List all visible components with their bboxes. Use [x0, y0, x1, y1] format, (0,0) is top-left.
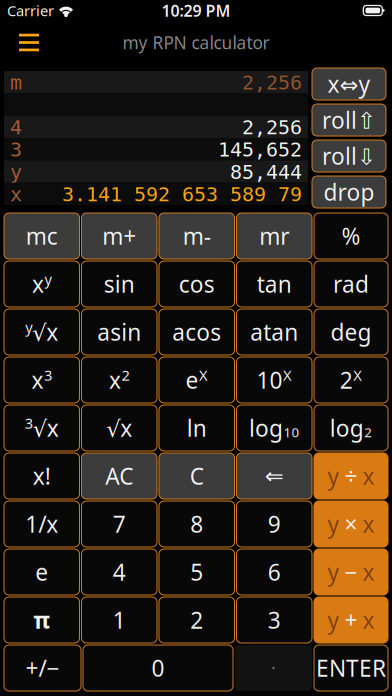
staticText: 2: [190, 605, 203, 635]
button[interactable]: 8: [159, 501, 234, 547]
staticText: +: [344, 605, 357, 635]
button[interactable]: π: [4, 597, 79, 643]
staticText: mc: [26, 221, 58, 251]
staticText: y: [44, 269, 51, 289]
button[interactable]: 2: [159, 597, 234, 643]
staticText: x: [10, 183, 22, 206]
staticText: y: [25, 317, 32, 337]
button[interactable]: Menu: [12, 25, 46, 59]
staticText: 5: [190, 557, 203, 587]
button[interactable]: asin: [81, 309, 157, 355]
button[interactable]: y: [314, 501, 388, 547]
button[interactable]: x: [81, 357, 157, 403]
staticText: 0: [151, 653, 164, 683]
button[interactable]: tan: [236, 261, 312, 307]
staticText: log: [330, 413, 364, 443]
staticText: x: [362, 461, 374, 491]
button[interactable]: 7: [81, 501, 157, 547]
staticText: cos: [179, 269, 215, 299]
staticText: x: [109, 365, 121, 395]
staticText: deg: [330, 317, 371, 347]
button[interactable]: mr: [236, 213, 312, 259]
button[interactable]: mc: [4, 213, 79, 259]
staticText: roll⇩: [322, 141, 376, 171]
staticText: x⇔y: [327, 69, 370, 99]
button[interactable]: 2: [314, 357, 388, 403]
button[interactable]: y: [314, 549, 388, 595]
button[interactable]: +/−: [4, 645, 81, 691]
staticText: y: [327, 461, 339, 491]
staticText: rad: [333, 269, 369, 299]
button[interactable]: rad: [314, 261, 388, 307]
button[interactable]: log: [314, 405, 388, 451]
button[interactable]: x: [4, 261, 79, 307]
staticText: −: [344, 557, 357, 587]
button[interactable]: y: [4, 309, 79, 355]
button[interactable]: cos: [159, 261, 234, 307]
button[interactable]: x: [4, 357, 79, 403]
staticText: ln: [187, 413, 207, 443]
button[interactable]: atan: [236, 309, 312, 355]
button[interactable]: y: [314, 453, 388, 499]
staticText: x!: [33, 461, 51, 491]
button[interactable]: %: [314, 213, 388, 259]
staticText: sin: [104, 269, 135, 299]
button[interactable]: e: [159, 357, 234, 403]
staticText: drop: [323, 177, 374, 207]
button[interactable]: drop: [312, 176, 386, 208]
staticText: m-: [183, 221, 211, 251]
staticText: 2,256: [242, 71, 302, 94]
button[interactable]: 1/x: [4, 501, 79, 547]
staticText: acos: [172, 317, 221, 347]
button[interactable]: 0: [83, 645, 233, 691]
button[interactable]: ENTER: [314, 645, 388, 691]
button[interactable]: 6: [236, 549, 312, 595]
staticText: mr: [259, 221, 289, 251]
button[interactable]: deg: [314, 309, 388, 355]
staticText: C: [190, 461, 204, 491]
button[interactable]: roll⇧: [312, 104, 386, 136]
button[interactable]: Decimal point: [235, 645, 312, 691]
staticText: X: [353, 365, 362, 385]
button[interactable]: sin: [81, 261, 157, 307]
staticText: y: [327, 605, 339, 635]
button[interactable]: 3: [4, 405, 79, 451]
staticText: 2: [364, 423, 372, 441]
button[interactable]: AC: [81, 453, 157, 499]
staticText: 3: [10, 138, 22, 161]
button[interactable]: 9: [236, 501, 312, 547]
staticText: tan: [257, 269, 292, 299]
button[interactable]: ⇐: [236, 453, 312, 499]
staticText: X: [199, 365, 208, 385]
button[interactable]: acos: [159, 309, 234, 355]
staticText: √x: [33, 413, 59, 443]
button[interactable]: 3: [236, 597, 312, 643]
staticText: 85,444: [230, 160, 302, 184]
staticText: 3.141 592 653 589 79: [62, 183, 302, 206]
staticText: 3: [25, 413, 33, 433]
button[interactable]: 1: [81, 597, 157, 643]
button[interactable]: √x: [81, 405, 157, 451]
button[interactable]: x⇔y: [312, 68, 386, 100]
button[interactable]: 10: [236, 357, 312, 403]
staticText: atan: [250, 317, 298, 347]
button[interactable]: C: [159, 453, 234, 499]
button[interactable]: ln: [159, 405, 234, 451]
button[interactable]: m+: [81, 213, 157, 259]
button[interactable]: 4: [81, 549, 157, 595]
button[interactable]: x!: [4, 453, 79, 499]
staticText: y: [327, 509, 339, 539]
button[interactable]: roll⇩: [312, 140, 386, 172]
staticText: 6: [268, 557, 281, 587]
staticText: my RPN calculator: [122, 31, 269, 54]
button[interactable]: log: [236, 405, 312, 451]
button[interactable]: y: [314, 597, 388, 643]
staticText: π: [33, 605, 50, 635]
staticText: log: [249, 413, 283, 443]
staticText: 7: [113, 509, 126, 539]
button[interactable]: e: [4, 549, 79, 595]
button[interactable]: 5: [159, 549, 234, 595]
staticText: y: [327, 557, 339, 587]
button[interactable]: m-: [159, 213, 234, 259]
staticText: 2: [340, 365, 353, 395]
